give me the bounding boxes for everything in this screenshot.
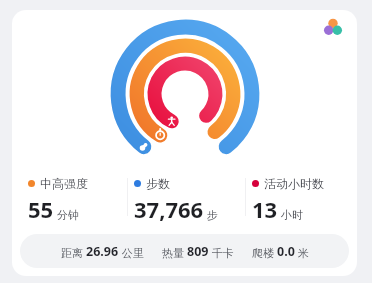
button[interactable]: 步数 [128, 172, 245, 224]
staticText: 步数 [146, 176, 170, 191]
staticText: 爬楼 [252, 245, 277, 260]
button[interactable]: Activity rings [109, 18, 261, 170]
staticText: 26.96 [86, 243, 119, 260]
button[interactable]: 距离 [20, 234, 349, 268]
staticText: 809 [187, 243, 209, 260]
staticText: 距离 [61, 245, 86, 260]
staticText: 13 [252, 194, 278, 224]
staticText: 分钟 [57, 208, 79, 222]
staticText: 步 [207, 208, 218, 222]
staticText: 活动小时数 [264, 176, 324, 191]
staticText: 公里 [119, 245, 144, 260]
staticText: 0.0 [277, 243, 295, 260]
staticText: 中高强度 [40, 176, 88, 191]
staticText: 37,766 [134, 194, 204, 224]
staticText: 千卡 [209, 245, 234, 260]
staticText: 小时 [281, 208, 303, 222]
staticText: 热量 [162, 245, 187, 260]
staticText: 米 [295, 245, 309, 260]
staticText: 55 [28, 194, 54, 224]
button[interactable]: 活动小时数 [246, 172, 351, 224]
button[interactable]: 中高强度 [22, 172, 127, 224]
button[interactable]: More apps [313, 12, 353, 42]
